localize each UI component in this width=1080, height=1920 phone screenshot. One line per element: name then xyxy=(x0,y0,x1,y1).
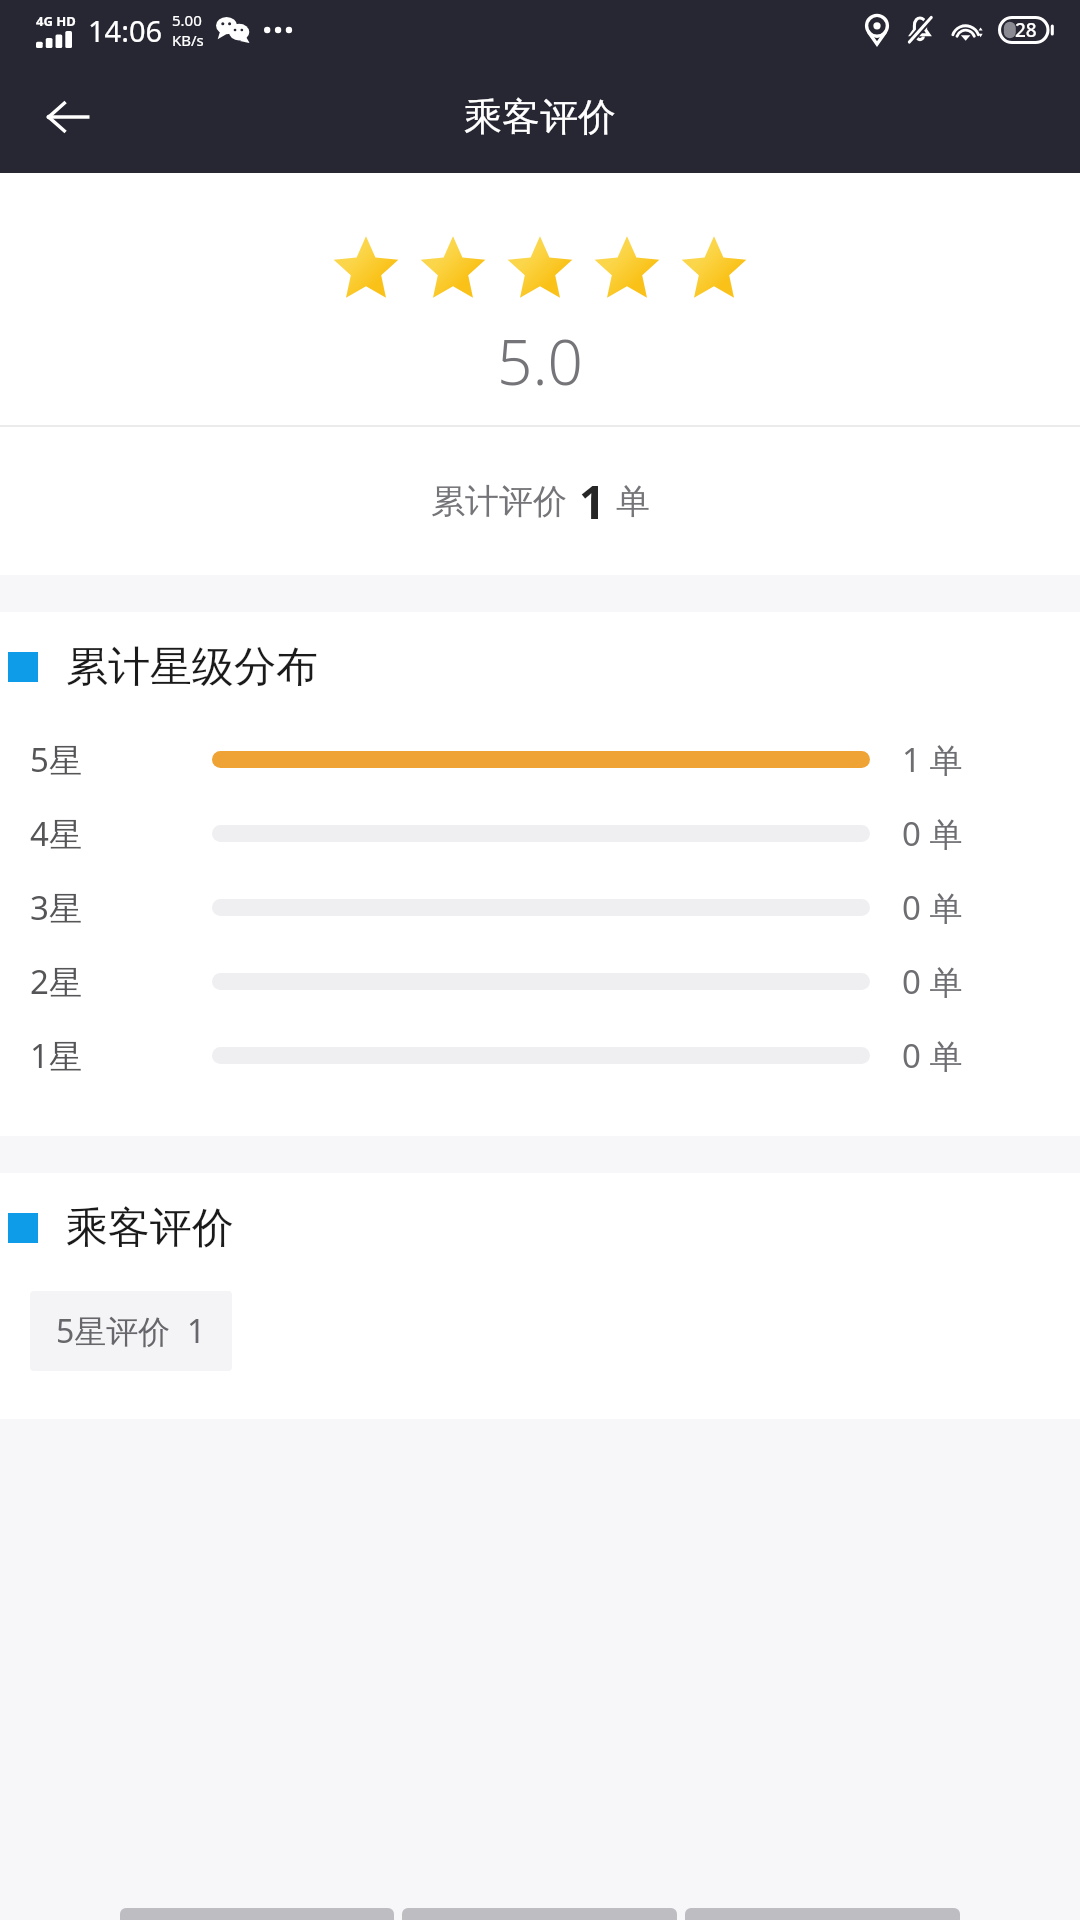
staticText: 0 单 xyxy=(902,959,963,1004)
staticText: 5.0 xyxy=(497,319,583,403)
other: Notifications off xyxy=(906,15,934,45)
staticText: 3星 xyxy=(30,885,82,930)
staticText: 乘客评价 xyxy=(66,1202,234,1255)
other: Battery 28 percent xyxy=(998,16,1054,44)
staticText: 累计评价 xyxy=(431,480,567,523)
other: Location xyxy=(864,15,890,45)
staticText: 单 xyxy=(616,480,650,523)
staticText: 1 单 xyxy=(902,737,963,782)
staticText: 4G HD xyxy=(36,12,76,30)
staticText: KB/s xyxy=(172,30,204,50)
staticText: 1 xyxy=(579,470,606,533)
staticText: 4星 xyxy=(30,811,82,856)
staticText: 28 xyxy=(1015,17,1037,43)
button[interactable]: Navigation button xyxy=(685,1908,960,1920)
staticText: 14:06 xyxy=(88,11,163,50)
staticText: 0 单 xyxy=(902,885,963,930)
button[interactable]: Back xyxy=(30,79,106,155)
button[interactable]: Navigation button xyxy=(402,1908,677,1920)
staticText: 累计星级分布 xyxy=(66,641,318,694)
other: Wi-Fi xyxy=(950,17,984,43)
staticText: 1星 xyxy=(30,1033,82,1078)
button[interactable]: 5星评价 1 xyxy=(30,1291,232,1371)
staticText: 0 单 xyxy=(902,811,963,856)
button[interactable]: Navigation button xyxy=(120,1908,394,1920)
staticText: 2星 xyxy=(30,959,82,1004)
staticText: 5星 xyxy=(30,737,82,782)
staticText: 5星评价 1 xyxy=(56,1309,206,1353)
staticText: 0 单 xyxy=(902,1033,963,1078)
staticText: 乘客评价 xyxy=(464,93,616,141)
staticText: 5.00 xyxy=(172,10,202,30)
